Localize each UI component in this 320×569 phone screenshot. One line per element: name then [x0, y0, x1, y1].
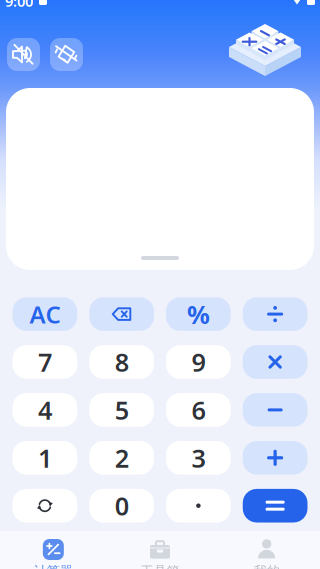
- button[interactable]: 计算器: [0, 531, 107, 569]
- button[interactable]: 9: [166, 345, 231, 379]
- button[interactable]: 1: [12, 441, 77, 475]
- staticText: 6: [191, 393, 205, 427]
- button[interactable]: %: [166, 297, 231, 331]
- button[interactable]: 4: [12, 393, 77, 427]
- button[interactable]: [243, 297, 308, 331]
- staticText: 5: [115, 393, 129, 427]
- button[interactable]: [243, 393, 308, 427]
- button[interactable]: [243, 345, 308, 379]
- button[interactable]: 2: [89, 441, 154, 475]
- staticText: 9:00: [5, 0, 33, 11]
- staticText: 8: [115, 345, 129, 379]
- button[interactable]: [89, 297, 154, 331]
- staticText: AC: [29, 298, 60, 330]
- button[interactable]: Mute sound: [7, 38, 40, 71]
- button[interactable]: Mute vibration: [50, 38, 83, 71]
- button[interactable]: 6: [166, 393, 231, 427]
- staticText: 工具箱: [140, 563, 179, 569]
- button[interactable]: 8: [89, 345, 154, 379]
- staticText: 2: [115, 441, 129, 475]
- staticText: 我的: [254, 563, 280, 569]
- staticText: 7: [38, 345, 52, 379]
- staticText: 1: [38, 441, 52, 475]
- button[interactable]: 工具箱: [107, 531, 213, 569]
- button[interactable]: 我的: [213, 531, 320, 569]
- button[interactable]: [243, 441, 308, 475]
- button[interactable]: 7: [12, 345, 77, 379]
- staticText: 计算器: [34, 563, 73, 569]
- staticText: 0: [115, 489, 129, 522]
- button[interactable]: [243, 489, 308, 522]
- staticText: 3: [191, 441, 205, 475]
- button[interactable]: 5: [89, 393, 154, 427]
- staticText: %: [187, 297, 210, 331]
- button[interactable]: AC: [12, 297, 77, 331]
- staticText: 9: [191, 345, 205, 379]
- button[interactable]: 3: [166, 441, 231, 475]
- button[interactable]: [12, 489, 77, 522]
- button[interactable]: 0: [89, 489, 154, 522]
- staticText: 4: [38, 393, 52, 427]
- button[interactable]: [166, 489, 231, 522]
